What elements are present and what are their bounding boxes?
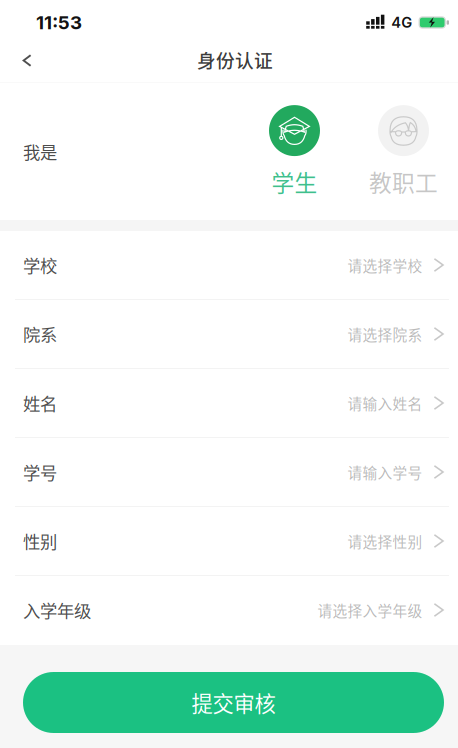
button[interactable]: 院系 [0, 300, 458, 369]
button[interactable]: 入学年级 [0, 576, 458, 645]
staticText: 教职工 [369, 165, 438, 198]
button[interactable]: 性别 [0, 507, 458, 576]
staticText: 学生 [271, 165, 317, 198]
staticText: 4G [391, 14, 412, 31]
staticText: 入学年级 [23, 597, 91, 623]
staticText: 请选择入学年级 [317, 599, 422, 621]
staticText: 请选择性别 [347, 530, 422, 552]
staticText: 请选择学校 [347, 254, 422, 276]
staticText: 请输入学号 [347, 461, 422, 483]
button[interactable]: 提交审核 [23, 672, 444, 733]
button[interactable]: 姓名 [0, 369, 458, 438]
staticText: 请输入姓名 [347, 392, 422, 414]
button[interactable]: Back [0, 45, 49, 82]
button[interactable]: 学生 [240, 100, 349, 202]
staticText: 学校 [23, 252, 57, 278]
staticText: 学号 [23, 459, 57, 485]
staticText: 身份认证 [197, 46, 273, 73]
button[interactable]: 学校 [0, 231, 458, 300]
staticText: 性别 [23, 528, 57, 554]
button[interactable]: 学号 [0, 438, 458, 507]
staticText: 我是 [23, 139, 57, 164]
button[interactable]: 教职工 [349, 100, 458, 202]
staticText: 姓名 [23, 390, 57, 416]
staticText: 请选择院系 [347, 323, 422, 345]
staticText: 院系 [23, 321, 57, 347]
staticText: 11:53 [36, 11, 82, 34]
staticText: 提交审核 [191, 687, 275, 718]
